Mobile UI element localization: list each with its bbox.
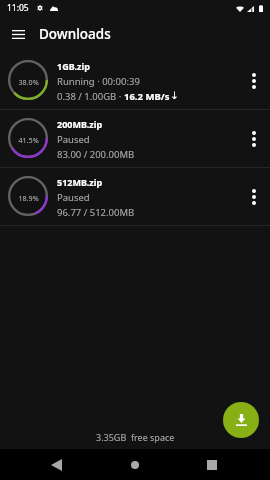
- staticText: 512MB.zip: [57, 176, 103, 188]
- staticText: 0.38 / 1.00GB ·: [57, 90, 124, 103]
- staticText: 11:05: [7, 2, 29, 14]
- button[interactable]: Download: [223, 402, 259, 438]
- button[interactable]: Recent apps: [193, 449, 233, 480]
- button[interactable]: 41.5%: [0, 110, 270, 167]
- staticText: ↓: [170, 90, 179, 102]
- button[interactable]: Navigation menu: [0, 16, 36, 52]
- staticText: 96.77 / 512.00MB: [57, 206, 135, 219]
- staticText: Running · 00:00:39: [57, 75, 140, 88]
- button[interactable]: 38.0%: [0, 52, 270, 109]
- button[interactable]: Home: [115, 449, 155, 480]
- button[interactable]: 18.9%: [0, 168, 270, 225]
- staticText: 41.5%: [18, 135, 39, 145]
- button[interactable]: More options: [238, 52, 270, 109]
- button[interactable]: More options: [238, 168, 270, 225]
- staticText: 83.00 / 200.00MB: [57, 148, 135, 161]
- staticText: Paused: [57, 191, 90, 204]
- staticText: 1GB.zip: [57, 60, 90, 72]
- staticText: Downloads: [39, 25, 111, 43]
- staticText: 16.2 MB/s: [124, 90, 170, 103]
- staticText: 200MB.zip: [57, 118, 103, 130]
- staticText: 18.9%: [18, 193, 39, 203]
- staticText: Paused: [57, 133, 90, 146]
- staticText: 3.35GB free space: [96, 431, 175, 443]
- button[interactable]: Back: [38, 449, 78, 480]
- button[interactable]: More options: [238, 110, 270, 167]
- staticText: 38.0%: [18, 77, 39, 87]
